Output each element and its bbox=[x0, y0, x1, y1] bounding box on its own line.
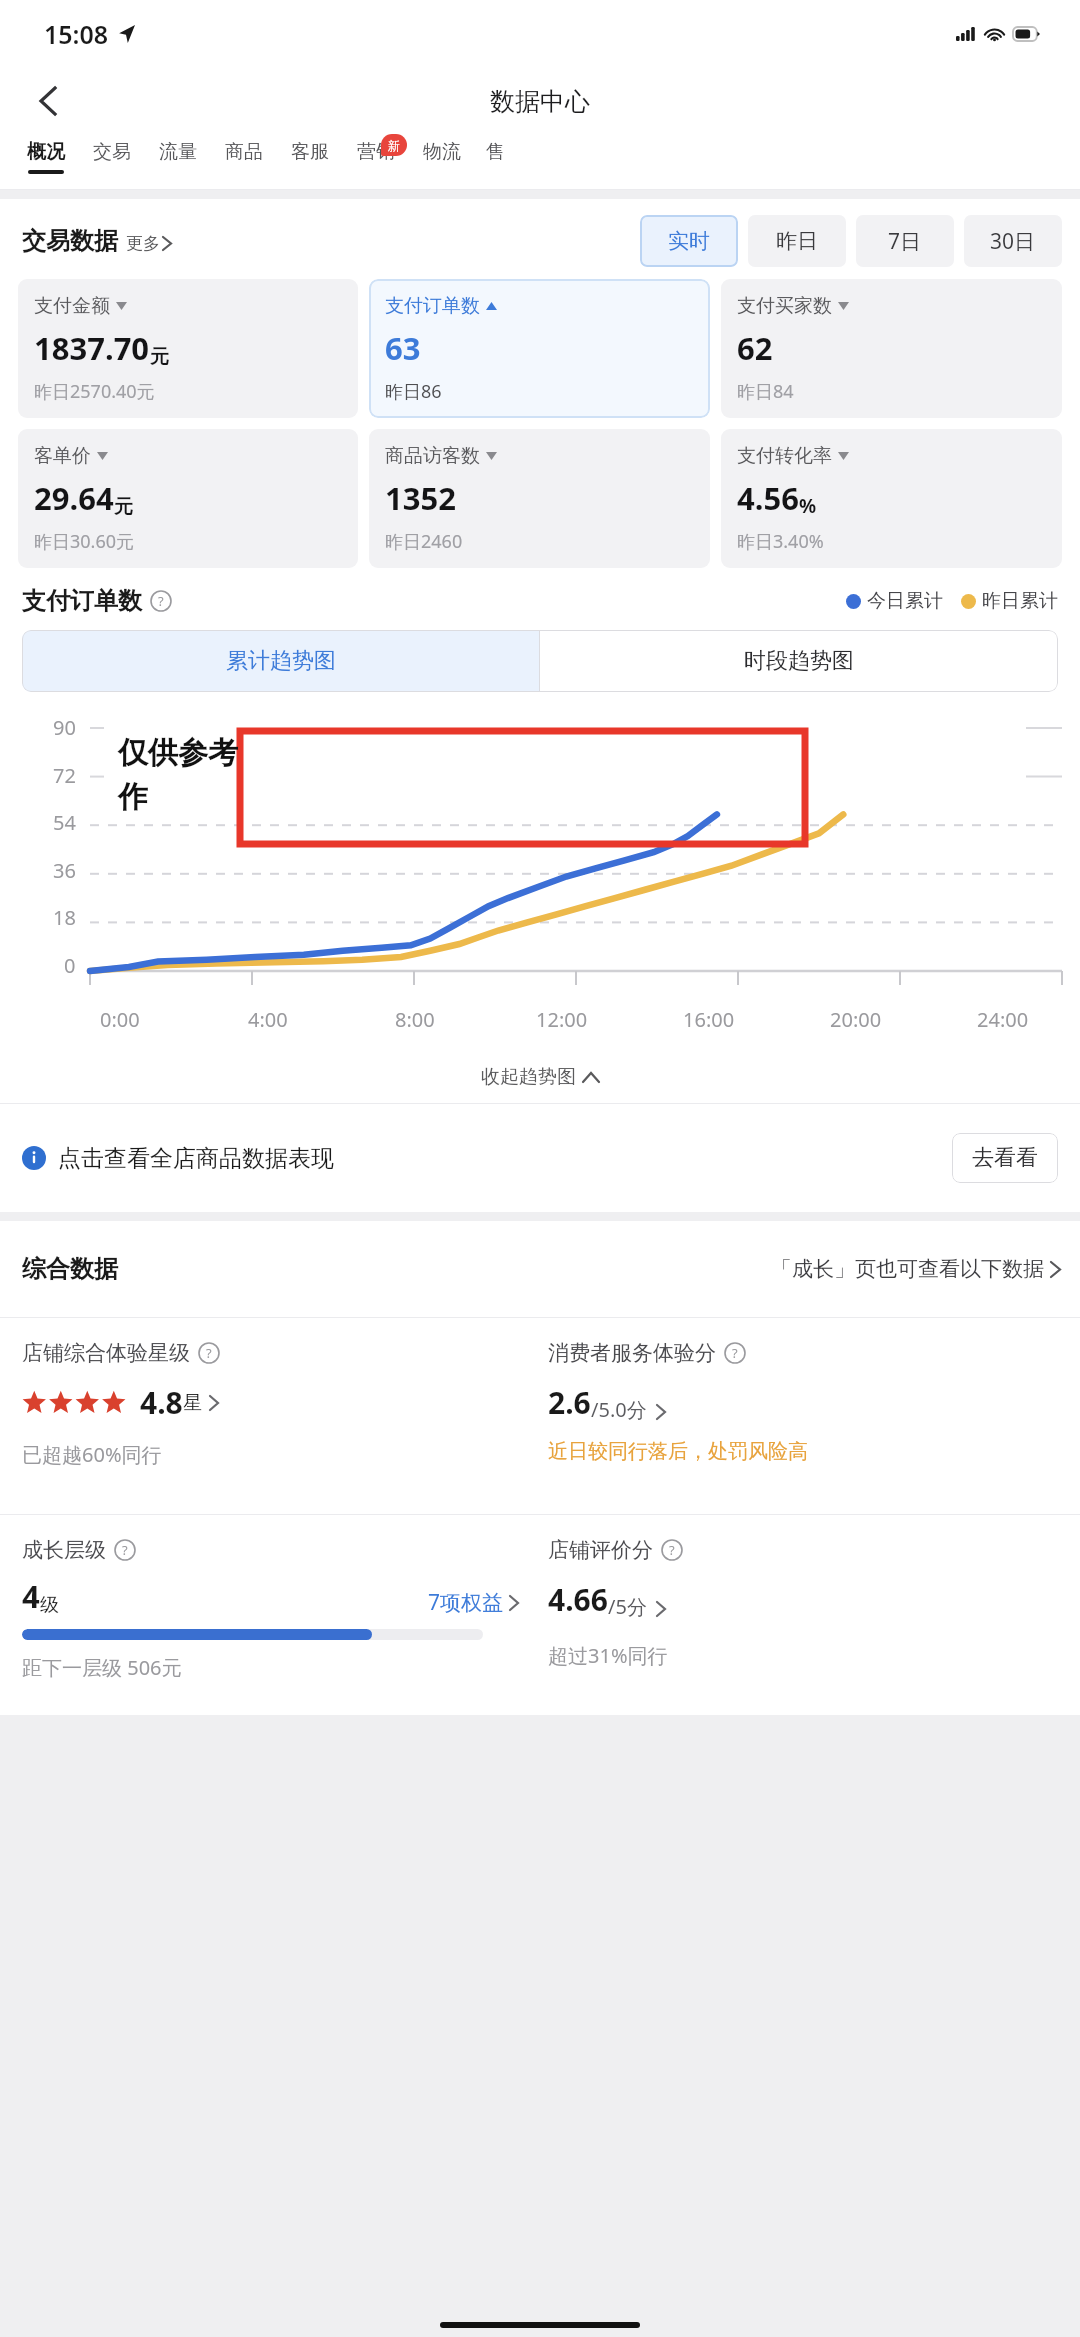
staticText: 交易 bbox=[93, 140, 131, 164]
staticText: 昨日30.60元 bbox=[34, 529, 135, 554]
staticText: 营销 bbox=[357, 140, 395, 164]
button[interactable]: 概况 bbox=[13, 134, 79, 190]
button[interactable]: 支付订单数 bbox=[369, 279, 710, 418]
button[interactable]: 客单价 bbox=[18, 429, 358, 568]
staticText: 综合数据 bbox=[22, 1254, 118, 1284]
staticText: 点击查看全店商品数据表现 bbox=[58, 1144, 334, 1173]
staticText: 数据中心 bbox=[490, 86, 590, 117]
button[interactable]: 7日 bbox=[856, 215, 954, 267]
staticText: 概况 bbox=[27, 140, 65, 164]
staticText: 36 bbox=[53, 857, 76, 884]
staticText: 1837.70 bbox=[34, 327, 150, 369]
staticText: 更多 bbox=[126, 233, 160, 254]
staticText: 时段趋势图 bbox=[744, 647, 854, 675]
staticText: 仅供参考 bbox=[118, 734, 238, 772]
button[interactable]: 售 bbox=[475, 134, 515, 190]
staticText: 15:08 bbox=[44, 17, 109, 51]
button[interactable]: 店铺评价分 bbox=[540, 1515, 1080, 1715]
button[interactable]: 交易数据 bbox=[22, 226, 171, 256]
staticText: 星 bbox=[183, 1391, 202, 1415]
button[interactable]: 时段趋势图 bbox=[540, 630, 1058, 692]
button[interactable]: 交易 bbox=[79, 134, 145, 190]
staticText: /5.0分 bbox=[591, 1396, 647, 1423]
staticText: 4:00 bbox=[248, 1006, 288, 1033]
staticText: 7日 bbox=[888, 227, 922, 256]
staticText: 收起趋势图 bbox=[481, 1065, 576, 1089]
staticText: 支付转化率 bbox=[737, 444, 832, 468]
button[interactable]: 支付转化率 bbox=[721, 429, 1062, 568]
staticText: 商品访客数 bbox=[385, 444, 480, 468]
button[interactable]: 去看看 bbox=[952, 1133, 1058, 1183]
button[interactable]: 昨日 bbox=[748, 215, 846, 267]
button[interactable]: 店铺综合体验星级 bbox=[0, 1318, 540, 1514]
staticText: 店铺综合体验星级 bbox=[22, 1340, 190, 1366]
staticText: 客服 bbox=[291, 140, 329, 164]
button[interactable]: 商品访客数 bbox=[369, 429, 710, 568]
staticText: 成长层级 bbox=[22, 1537, 106, 1563]
staticText: 物流 bbox=[423, 140, 461, 164]
button[interactable]: 实时 bbox=[640, 215, 738, 267]
staticText: 售 bbox=[486, 140, 505, 164]
button[interactable]: 「成长」页也可查看以下数据 bbox=[771, 1256, 1060, 1282]
button[interactable]: 支付金额 bbox=[18, 279, 358, 418]
staticText: 流量 bbox=[159, 140, 197, 164]
staticText: 客单价 bbox=[34, 444, 91, 468]
staticText: 昨日2460 bbox=[385, 529, 463, 554]
staticText: 作 bbox=[118, 778, 148, 816]
button[interactable]: Back bbox=[24, 77, 72, 125]
staticText: 累计趋势图 bbox=[226, 647, 336, 675]
button[interactable]: 物流 bbox=[409, 134, 475, 190]
button[interactable]: 消费者服务体验分 bbox=[540, 1318, 1080, 1514]
staticText: ? bbox=[732, 1344, 738, 1362]
staticText: 昨日2570.40元 bbox=[34, 379, 155, 404]
staticText: 18 bbox=[53, 904, 76, 931]
staticText: 63 bbox=[385, 327, 421, 369]
staticText: 16:00 bbox=[683, 1006, 735, 1033]
staticText: 元 bbox=[150, 345, 169, 369]
button[interactable]: 营销 bbox=[343, 134, 409, 190]
staticText: /5分 bbox=[608, 1593, 647, 1620]
staticText: 12:00 bbox=[536, 1006, 588, 1033]
button[interactable]: 支付买家数 bbox=[721, 279, 1062, 418]
staticText: 距下一层级 506元 bbox=[22, 1654, 182, 1681]
staticText: 商品 bbox=[225, 140, 263, 164]
button[interactable]: 收起趋势图 bbox=[0, 1065, 1080, 1089]
staticText: 昨日 bbox=[776, 228, 818, 254]
staticText: 已超越60%同行 bbox=[22, 1441, 162, 1468]
staticText: ? bbox=[669, 1541, 675, 1559]
staticText: 30日 bbox=[990, 227, 1036, 256]
staticText: 54 bbox=[53, 809, 76, 836]
staticText: 62 bbox=[737, 327, 773, 369]
button[interactable]: 商品 bbox=[211, 134, 277, 190]
staticText: 近日较同行落后，处罚风险高 bbox=[548, 1439, 808, 1464]
button[interactable]: 成长层级 bbox=[0, 1515, 540, 1715]
staticText: 级 bbox=[40, 1593, 59, 1617]
staticText: 72 bbox=[53, 762, 76, 789]
staticText: 0:00 bbox=[100, 1006, 140, 1033]
staticText: 20:00 bbox=[830, 1006, 882, 1033]
staticText: 7项权益 bbox=[428, 1588, 504, 1617]
staticText: 4.8 bbox=[140, 1382, 183, 1423]
staticText: % bbox=[799, 493, 817, 519]
staticText: 交易数据 bbox=[22, 226, 118, 256]
staticText: 1352 bbox=[385, 477, 456, 519]
button[interactable]: 30日 bbox=[964, 215, 1062, 267]
staticText: 昨日3.40% bbox=[737, 529, 824, 554]
staticText: 2.6 bbox=[548, 1382, 591, 1423]
staticText: ? bbox=[206, 1344, 212, 1362]
staticText: 8:00 bbox=[395, 1006, 435, 1033]
staticText: 元 bbox=[114, 495, 133, 519]
staticText: 昨日86 bbox=[385, 379, 442, 404]
button[interactable]: 累计趋势图 bbox=[22, 630, 539, 692]
button[interactable]: 客服 bbox=[277, 134, 343, 190]
staticText: 支付订单数 bbox=[22, 586, 142, 616]
staticText: 支付买家数 bbox=[737, 294, 832, 318]
staticText: 去看看 bbox=[972, 1144, 1038, 1172]
button[interactable]: 流量 bbox=[145, 134, 211, 190]
staticText: 超过31%同行 bbox=[548, 1642, 668, 1669]
staticText: 昨日84 bbox=[737, 379, 794, 404]
staticText: 4.66 bbox=[548, 1579, 608, 1620]
staticText: 4.56 bbox=[737, 477, 799, 519]
staticText: 「成长」页也可查看以下数据 bbox=[771, 1256, 1044, 1282]
staticText: 29.64 bbox=[34, 477, 114, 519]
